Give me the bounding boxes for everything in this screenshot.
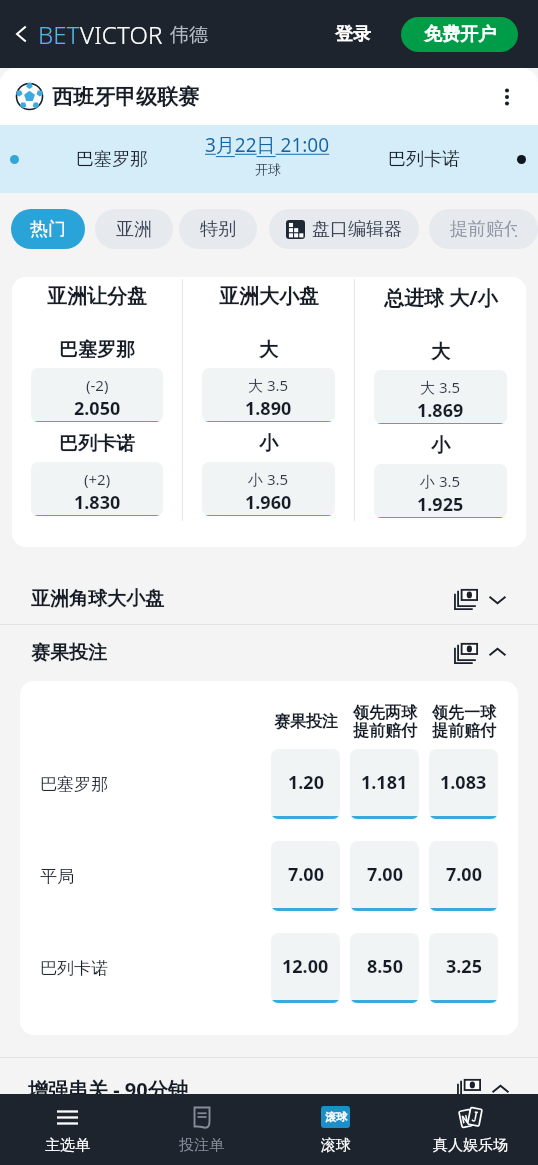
- staticText: 小: [259, 432, 278, 456]
- button[interactable]: 7.00: [350, 841, 419, 911]
- staticText: VICTOR: [80, 18, 163, 51]
- button[interactable]: More options: [492, 82, 522, 112]
- staticText: (+2): [84, 469, 111, 489]
- staticText: 伟德: [170, 23, 208, 47]
- staticText: 1.869: [417, 398, 464, 423]
- staticText: 登录: [335, 23, 371, 46]
- staticText: 西班牙甲级联赛: [52, 84, 199, 110]
- button[interactable]: 提前赔付: [429, 209, 538, 249]
- staticText: 平局: [40, 866, 74, 887]
- button[interactable]: 滚球: [268, 1094, 403, 1165]
- staticText: 小 3.5: [248, 469, 289, 489]
- staticText: 领先一球 提前赔付: [432, 703, 496, 741]
- staticText: 7.00: [446, 862, 482, 887]
- staticText: 亚洲: [116, 218, 152, 241]
- button[interactable]: Cash out: [457, 1077, 481, 1101]
- staticText: 开球: [255, 161, 281, 177]
- staticText: 热门: [30, 218, 66, 241]
- staticText: 小 3.5: [420, 471, 461, 491]
- staticText: 3.25: [446, 954, 482, 979]
- button[interactable]: 12.00: [271, 933, 340, 1003]
- button[interactable]: Back: [7, 20, 35, 48]
- staticText: 巴列卡诺: [40, 958, 108, 979]
- staticText: 特别: [200, 218, 236, 241]
- staticText: 滚球: [325, 1110, 347, 1124]
- button[interactable]: 投注单: [134, 1094, 268, 1165]
- button[interactable]: 赛果投注: [0, 625, 538, 680]
- button[interactable]: 亚洲: [95, 209, 173, 249]
- button[interactable]: (-2): [31, 368, 163, 422]
- staticText: 1.925: [417, 492, 464, 517]
- button[interactable]: 7.00: [271, 841, 340, 911]
- staticText: 巴塞罗那: [76, 148, 148, 171]
- staticText: 亚洲让分盘: [47, 284, 147, 309]
- staticText: BET: [38, 18, 80, 51]
- button[interactable]: 免费开户: [401, 17, 518, 52]
- staticText: 提前赔付: [450, 218, 517, 241]
- staticText: 巴塞罗那: [40, 774, 108, 795]
- staticText: 主选单: [45, 1136, 90, 1155]
- staticText: 12.00: [282, 954, 329, 979]
- button[interactable]: 8.50: [350, 933, 419, 1003]
- button[interactable]: Cash out: [454, 587, 478, 611]
- staticText: 增强串关 - 90分钟: [28, 1076, 188, 1103]
- button[interactable]: 亚洲角球大小盘: [0, 574, 538, 624]
- staticText: 大: [259, 338, 278, 362]
- button[interactable]: 热门: [11, 209, 85, 249]
- staticText: 1.830: [74, 490, 121, 515]
- button[interactable]: 7.00: [429, 841, 498, 911]
- button[interactable]: 特别: [179, 209, 257, 249]
- button[interactable]: Cash out: [454, 641, 478, 665]
- staticText: 总进球 大/小: [384, 284, 498, 311]
- staticText: 投注单: [179, 1136, 224, 1155]
- staticText: 免费开户: [424, 23, 496, 46]
- staticText: 1.890: [245, 396, 292, 421]
- staticText: 大 3.5: [248, 375, 289, 395]
- button[interactable]: 真人娱乐场: [403, 1094, 538, 1165]
- staticText: (-2): [86, 375, 109, 395]
- button[interactable]: 大 3.5: [202, 368, 335, 422]
- staticText: 大: [431, 340, 450, 364]
- staticText: 7.00: [367, 862, 403, 887]
- staticText: 亚洲大小盘: [219, 284, 319, 309]
- button[interactable]: 小 3.5: [202, 462, 335, 516]
- button[interactable]: 盘口编辑器: [269, 209, 419, 249]
- button[interactable]: 大 3.5: [374, 370, 507, 424]
- staticText: 1.960: [245, 490, 292, 515]
- button[interactable]: 3.25: [429, 933, 498, 1003]
- button[interactable]: 1.083: [429, 749, 498, 819]
- staticText: 大 3.5: [420, 377, 461, 397]
- button[interactable]: 登录: [331, 15, 375, 54]
- staticText: 盘口编辑器: [312, 218, 402, 241]
- button[interactable]: 1.181: [350, 749, 419, 819]
- staticText: 巴列卡诺: [388, 148, 460, 171]
- staticText: 亚洲角球大小盘: [31, 587, 164, 611]
- staticText: 领先两球 提前赔付: [353, 703, 417, 741]
- button[interactable]: 增强串关 - 90分钟: [0, 1058, 538, 1120]
- button[interactable]: 主选单: [0, 1094, 134, 1165]
- staticText: 3月22日 21:00: [205, 132, 330, 158]
- staticText: 8.50: [367, 954, 403, 979]
- staticText: 1.083: [440, 770, 487, 795]
- staticText: 巴塞罗那: [59, 338, 135, 362]
- staticText: 1.181: [361, 770, 408, 795]
- staticText: 1.20: [288, 770, 324, 795]
- button[interactable]: 小 3.5: [374, 464, 507, 518]
- staticText: 7.00: [288, 862, 324, 887]
- staticText: 赛果投注: [31, 641, 107, 665]
- staticText: 2.050: [74, 396, 121, 421]
- button[interactable]: (+2): [31, 462, 163, 516]
- staticText: 滚球: [321, 1136, 351, 1155]
- staticText: 真人娱乐场: [433, 1136, 508, 1155]
- staticText: 小: [431, 434, 450, 458]
- staticText: 赛果投注: [274, 712, 338, 732]
- staticText: 巴列卡诺: [59, 432, 135, 456]
- button[interactable]: 1.20: [271, 749, 340, 819]
